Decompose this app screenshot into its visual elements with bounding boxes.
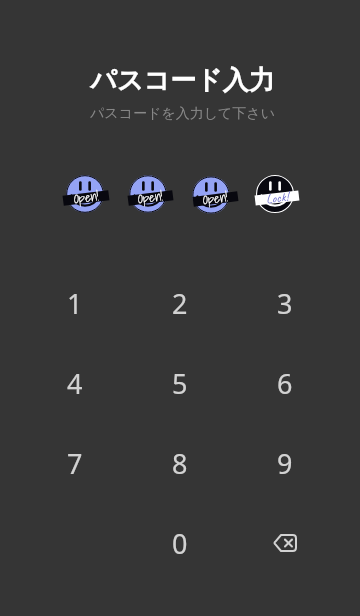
staticText: 6 — [277, 365, 293, 402]
staticText: Lock! — [265, 189, 290, 207]
staticText: 5 — [172, 365, 188, 402]
button[interactable]: 4 — [35, 353, 115, 413]
staticText: 9 — [277, 445, 293, 482]
button[interactable]: 6 — [245, 353, 325, 413]
staticText: 7 — [67, 445, 83, 482]
button[interactable]: 7 — [35, 433, 115, 493]
staticText: 4 — [67, 365, 83, 402]
button[interactable]: 1 — [35, 273, 115, 333]
button[interactable]: 0 — [140, 513, 220, 573]
staticText: 1 — [67, 285, 83, 322]
button[interactable]: Backspace — [245, 513, 325, 573]
staticText: 3 — [277, 285, 293, 322]
button[interactable]: 5 — [140, 353, 220, 413]
button[interactable]: 2 — [140, 273, 220, 333]
staticText: Open! — [73, 186, 100, 209]
staticText: Open! — [137, 185, 164, 209]
staticText: 8 — [172, 445, 188, 482]
button[interactable]: 8 — [140, 433, 220, 493]
button[interactable]: 9 — [245, 433, 325, 493]
button[interactable]: 3 — [245, 273, 325, 333]
staticText: パスコード入力 — [90, 64, 275, 97]
staticText: パスコードを入力して下さい — [90, 105, 275, 123]
staticText: Open! — [202, 186, 229, 210]
staticText: 2 — [172, 285, 188, 322]
staticText: 0 — [172, 525, 188, 562]
